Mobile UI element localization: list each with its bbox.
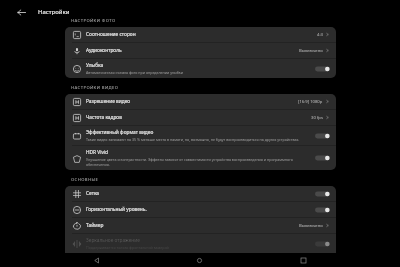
button[interactable]: Зеркальное отражение (65, 234, 336, 253)
button[interactable]: Аудиоконтроль (65, 43, 336, 58)
button[interactable]: Toggle (315, 132, 330, 140)
button[interactable]: HDR Vivid (65, 146, 336, 170)
staticText: Поддерживается только фронтальной камеро… (86, 245, 169, 250)
staticText: Таймер (86, 222, 104, 229)
staticText: НАСТРОЙКИ ВИДЕО (71, 85, 119, 91)
button[interactable]: Сетка (65, 186, 336, 201)
staticText: Автоматическая съемка фото при определен… (86, 70, 183, 75)
button[interactable]: Home (192, 253, 206, 267)
button[interactable]: Соотношение сторон (65, 27, 336, 42)
staticText: Тег места (86, 257, 109, 264)
button[interactable]: Улыбка (65, 59, 336, 78)
button[interactable]: Тег места (65, 254, 336, 267)
button[interactable]: Эффективный формат видео (65, 126, 336, 145)
button[interactable]: Toggle (315, 65, 330, 73)
staticText: 30 fps (311, 115, 323, 121)
staticText: Такие видео занимают на 35 % меньше мест… (86, 137, 300, 142)
button[interactable]: Toggle (315, 240, 330, 248)
staticText: Выключено (299, 48, 323, 54)
button[interactable]: Toggle (315, 206, 330, 214)
staticText: [16:9] 1080p (298, 99, 323, 105)
staticText: Выключено (299, 223, 323, 229)
staticText: Зеркальное отражение (86, 237, 140, 244)
button[interactable]: Toggle (315, 190, 330, 198)
button[interactable]: Горизонтальный уровень. (65, 202, 336, 217)
staticText: Сетка (86, 190, 100, 197)
button[interactable]: Разрешение видео (65, 94, 336, 109)
staticText: Улыбка (86, 62, 104, 69)
staticText: 4:3 (317, 32, 323, 38)
staticText: Настройки (38, 8, 70, 16)
staticText: Частота кадров (86, 114, 122, 121)
staticText: HDR Vivid (86, 149, 109, 156)
staticText: НАСТРОЙКИ ФОТО (71, 18, 116, 24)
button[interactable]: Recent apps (296, 253, 310, 267)
staticText: Горизонтальный уровень. (86, 206, 147, 213)
button[interactable]: Toggle (315, 154, 330, 162)
staticText: Эффективный формат видео (86, 129, 154, 136)
button[interactable]: Back (14, 5, 28, 19)
staticText: ОСНОВНЫЕ (71, 177, 99, 183)
staticText: Аудиоконтроль (86, 47, 122, 54)
button[interactable]: Таймер (65, 218, 336, 233)
staticText: Разрешение видео (86, 98, 131, 105)
staticText: Улучшение цвета и контрастности. Эффекты… (86, 157, 311, 167)
button[interactable]: Частота кадров (65, 110, 336, 125)
button[interactable]: Back (89, 253, 103, 267)
staticText: Соотношение сторон (86, 31, 136, 38)
